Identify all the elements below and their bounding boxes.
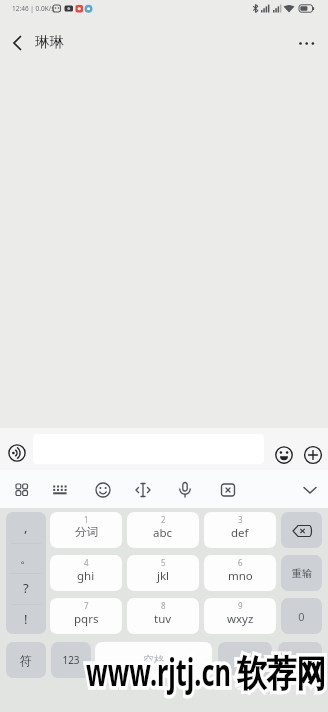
staticText: ,	[24, 518, 28, 536]
button[interactable]	[10, 478, 34, 502]
button[interactable]: ?	[6, 573, 46, 603]
staticText: 9	[238, 600, 243, 611]
button[interactable]: 2	[127, 512, 199, 548]
button[interactable]: 7	[50, 598, 122, 634]
button[interactable]: 重输	[281, 555, 322, 591]
button[interactable]	[216, 478, 240, 502]
button[interactable]	[302, 444, 324, 466]
staticText: 琳琳	[35, 33, 64, 51]
button[interactable]: 空格	[95, 642, 212, 678]
button[interactable]: 5	[127, 555, 199, 591]
staticText: 分词	[75, 525, 98, 539]
button[interactable]: ,	[6, 512, 46, 542]
staticText: 符	[20, 653, 32, 668]
staticText: def	[231, 525, 249, 541]
staticText: 3	[238, 514, 243, 525]
button[interactable]	[273, 444, 295, 466]
staticText: wxyz	[227, 611, 254, 627]
button[interactable]: 符	[6, 642, 46, 678]
staticText: 8	[161, 600, 166, 611]
button[interactable]: !	[6, 604, 46, 634]
staticText: abc	[153, 525, 173, 541]
button[interactable]	[281, 512, 322, 548]
staticText: 。	[20, 550, 33, 566]
button[interactable]	[91, 478, 115, 502]
button[interactable]	[278, 642, 322, 678]
button[interactable]: 123	[51, 642, 91, 678]
button[interactable]: 8	[127, 598, 199, 634]
button[interactable]	[6, 442, 28, 464]
button[interactable]	[48, 478, 72, 502]
button[interactable]: 0	[281, 598, 322, 634]
button[interactable]	[298, 478, 322, 502]
button[interactable]	[218, 642, 272, 678]
staticText: 2	[161, 514, 166, 525]
staticText: 12:46 | 0.0K/s	[12, 4, 55, 13]
button[interactable]: 。	[6, 543, 46, 573]
staticText: 6	[238, 557, 243, 568]
button[interactable]	[4, 30, 32, 56]
staticText: mno	[228, 568, 253, 584]
button[interactable]: 9	[204, 598, 276, 634]
button[interactable]	[173, 478, 197, 502]
button[interactable]	[131, 478, 155, 502]
staticText: ghi	[77, 568, 95, 584]
staticText: !	[24, 610, 28, 628]
staticText: 5	[161, 557, 166, 568]
button[interactable]: 4	[50, 555, 122, 591]
staticText: 4	[84, 557, 89, 568]
staticText: tuv	[154, 611, 172, 627]
staticText: 重输	[292, 567, 312, 580]
button[interactable]: 6	[204, 555, 276, 591]
staticText: 1	[84, 514, 89, 525]
staticText: 空格	[143, 653, 165, 667]
staticText: 123	[62, 653, 80, 667]
button[interactable]: 1	[50, 512, 122, 548]
staticText: pqrs	[74, 611, 99, 627]
button[interactable]: 3	[204, 512, 276, 548]
staticText: 0	[298, 609, 305, 624]
staticText: ?	[23, 579, 29, 597]
button[interactable]	[292, 30, 322, 56]
staticText: 7	[84, 600, 89, 611]
staticText: jkl	[157, 568, 170, 584]
